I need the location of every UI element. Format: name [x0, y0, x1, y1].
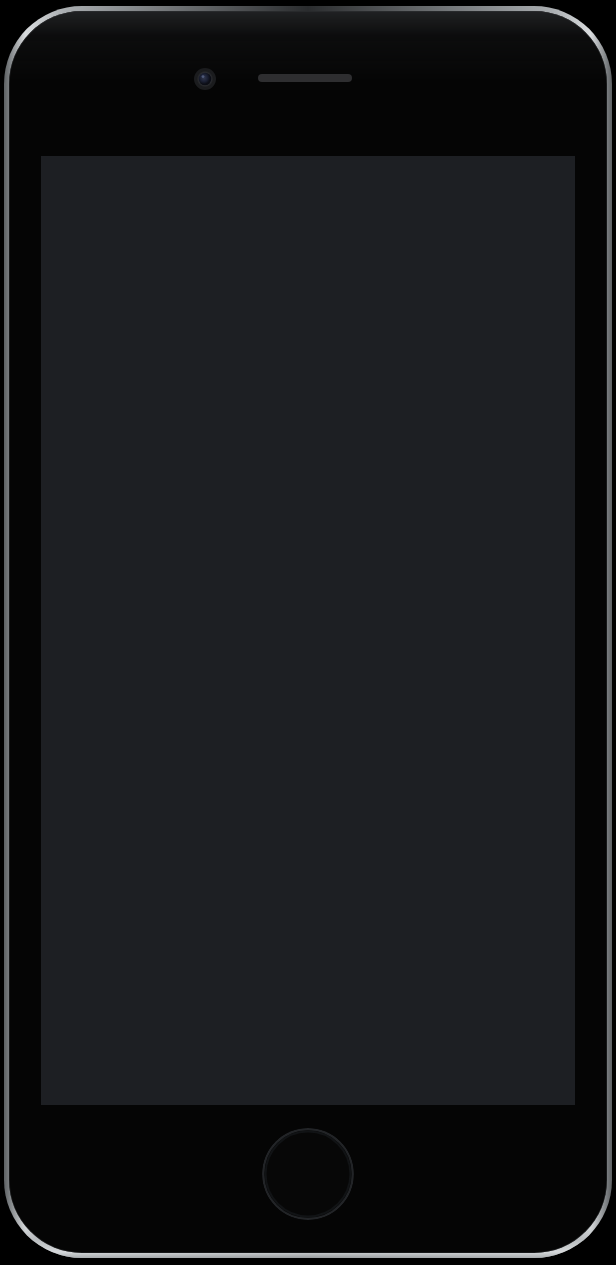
button[interactable]: Home	[262, 1128, 354, 1220]
other: Phone device frame	[0, 0, 616, 1265]
